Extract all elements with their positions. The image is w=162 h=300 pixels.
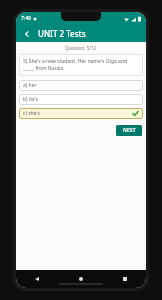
- staticText: 7:49: [21, 15, 31, 22]
- button[interactable]: Back: [32, 274, 42, 284]
- staticText: a) her: [23, 82, 37, 89]
- button[interactable]: c) she's: [19, 108, 143, 119]
- button[interactable]: NEXT: [116, 125, 142, 136]
- button[interactable]: Back: [21, 28, 33, 40]
- staticText: b) he's: [23, 96, 39, 103]
- staticText: 5) She's a new student. Her name's Olga …: [23, 58, 128, 72]
- button[interactable]: Recent apps: [120, 274, 130, 284]
- button[interactable]: b) he's: [19, 94, 143, 105]
- button[interactable]: a) her: [19, 80, 143, 91]
- button[interactable]: Home: [76, 274, 86, 284]
- staticText: NEXT: [123, 127, 136, 134]
- staticText: c) she's: [23, 110, 40, 117]
- staticText: UNIT 2 Tests: [38, 28, 86, 39]
- staticText: Question: 5/12: [65, 45, 97, 51]
